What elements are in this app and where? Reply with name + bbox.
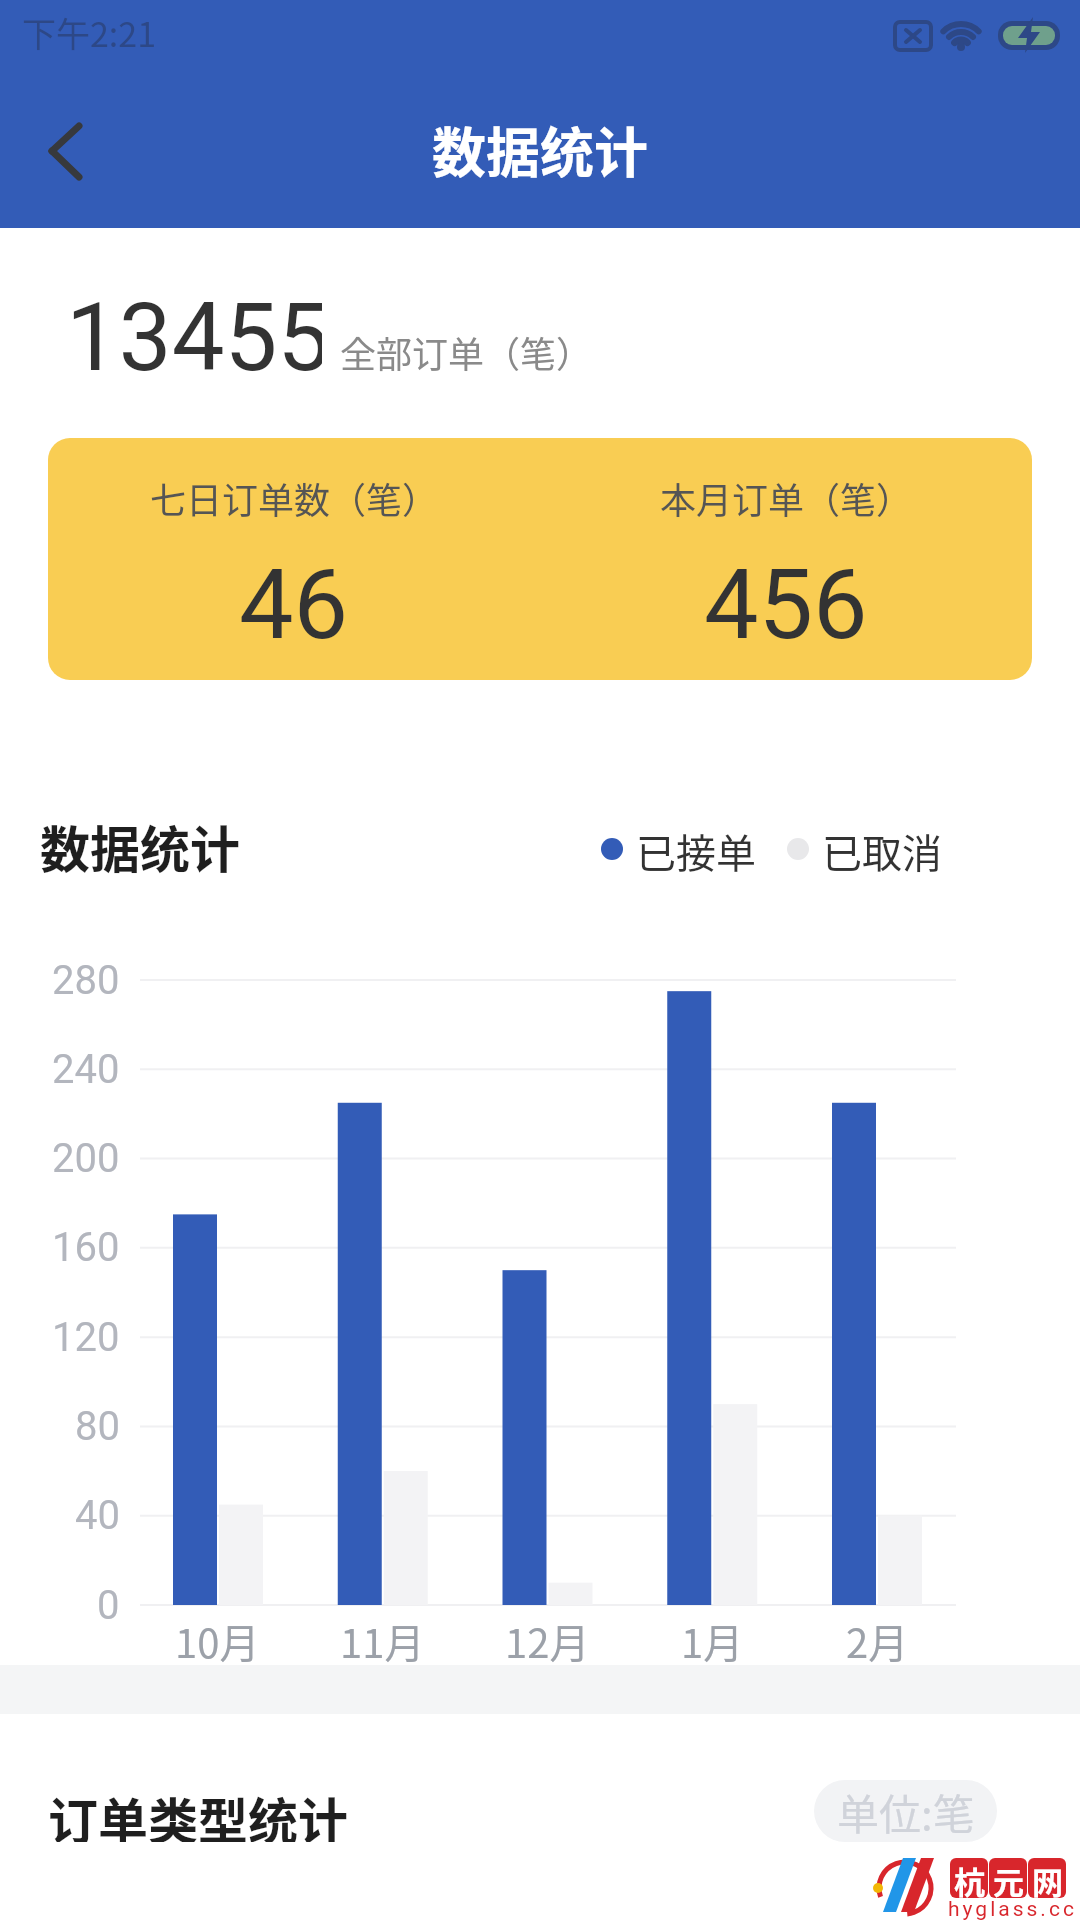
staticText: 网 xyxy=(1032,1858,1063,1898)
staticText: 2月 xyxy=(846,1612,909,1664)
staticText: 13455 xyxy=(66,283,322,383)
staticText: 下午2:21 xyxy=(22,8,157,56)
staticText: 280 xyxy=(52,957,120,1004)
staticText: 160 xyxy=(52,1224,120,1271)
staticText: 全部订单（笔） xyxy=(340,326,593,378)
button[interactable]: 单位:笔 xyxy=(814,1780,997,1842)
staticText: 单位:笔 xyxy=(837,1781,975,1842)
staticText: hyglass.cc xyxy=(948,1897,1074,1920)
staticText: 10月 xyxy=(175,1612,260,1664)
staticText: 200 xyxy=(52,1135,120,1182)
staticText: 本月订单（笔） xyxy=(660,472,913,524)
staticText: 1月 xyxy=(681,1612,744,1664)
staticText: 80 xyxy=(75,1403,120,1450)
staticText: 七日订单数（笔） xyxy=(150,472,439,524)
staticText: 已取消 xyxy=(822,822,942,876)
staticText: 120 xyxy=(52,1314,120,1361)
staticText: 0 xyxy=(97,1582,120,1629)
staticText: 订单类型统计 xyxy=(48,1782,348,1842)
staticText: 12月 xyxy=(505,1612,590,1664)
staticText: 40 xyxy=(75,1492,120,1539)
staticText: 240 xyxy=(52,1046,120,1093)
staticText: 已接单 xyxy=(636,822,756,876)
staticText: 456 xyxy=(704,548,868,648)
staticText: 元 xyxy=(993,1858,1024,1898)
staticText: 杭 xyxy=(954,1858,985,1898)
staticText: 数据统计 xyxy=(40,810,240,876)
staticText: 数据统计 xyxy=(432,110,648,178)
staticText: 46 xyxy=(239,548,349,648)
staticText: 11月 xyxy=(340,1612,425,1664)
button[interactable] xyxy=(28,105,123,200)
button[interactable] xyxy=(48,438,1032,680)
